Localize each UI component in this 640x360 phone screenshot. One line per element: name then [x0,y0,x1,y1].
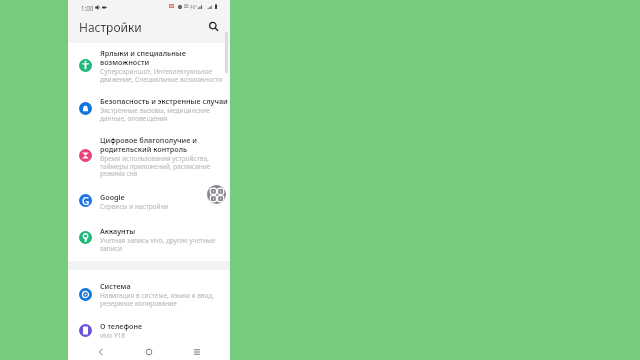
staticText: Суперскриншот, Интеллектуальное движение… [100,67,223,84]
button[interactable] [68,127,230,178]
button[interactable] [68,85,230,127]
staticText: О телефоне [100,321,143,331]
button[interactable] [68,178,230,212]
staticText: 46° [190,4,198,10]
button[interactable] [68,212,230,261]
staticText: G [82,194,90,207]
staticText: Цифровое благополучие и родительский кон… [100,135,197,154]
button[interactable] [68,313,230,343]
button[interactable] [68,42,230,85]
staticText: Система [100,281,131,291]
staticText: Безопасность и экстренные случаи [100,96,228,106]
staticText: vivo Y18 [100,331,126,340]
staticText: Экстренные вызовы, медицинские данные, о… [100,106,210,123]
staticText: 1:00 [81,4,94,12]
staticText: Учетная запись vivo, другие учетные запи… [100,236,216,253]
staticText: Аккаунты [100,226,136,236]
staticText: Время использования устройства, таймеры … [100,154,211,178]
staticText: Сервисы и настройки [100,202,169,211]
staticText: Навигация в системе, языки и ввод, резер… [100,291,215,308]
staticText: Настройки [79,19,142,35]
button[interactable]: Search [203,16,223,36]
button[interactable]: Multi window shortcut [207,185,226,204]
button[interactable] [68,273,230,313]
staticText: Ярлыки и специальные возможности [100,48,186,67]
button[interactable]: Home [134,343,164,360]
staticText: Google [100,192,125,202]
button[interactable]: Recent apps [182,343,212,360]
button[interactable]: Back [86,343,116,360]
